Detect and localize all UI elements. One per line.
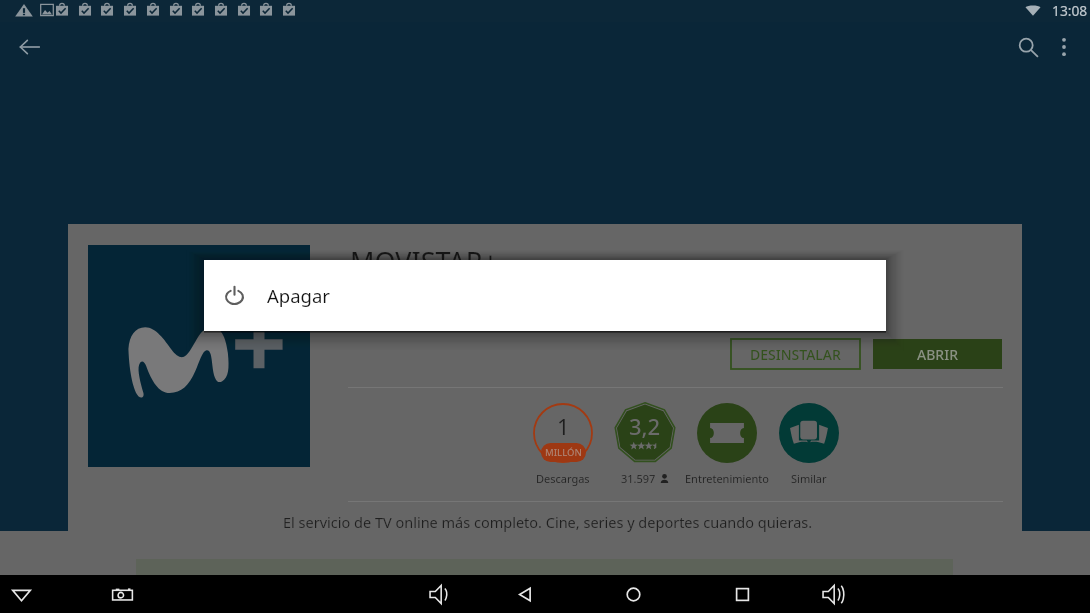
staticText: MILLÓN — [545, 446, 582, 459]
button[interactable]: Volume down — [423, 575, 455, 613]
staticText: MOVISTAR+ — [350, 243, 499, 280]
staticText: 31.597 — [621, 471, 656, 486]
staticText: Similar — [791, 471, 827, 486]
staticText: 3,2 — [629, 411, 661, 441]
button[interactable]: 1 — [488, 403, 638, 489]
button[interactable]: Apagar — [204, 260, 886, 331]
button[interactable]: 3,2 — [570, 403, 720, 489]
staticText: Apagar — [267, 283, 330, 308]
button[interactable]: Search — [1007, 26, 1049, 68]
button[interactable]: ABRIR — [873, 339, 1002, 369]
button[interactable]: Entretenimiento — [652, 403, 802, 489]
staticText: 13:08 — [1052, 1, 1088, 20]
button[interactable]: DESINSTALAR — [731, 339, 860, 369]
staticText: 1 — [557, 411, 570, 441]
button[interactable]: Volume up — [816, 575, 848, 613]
button[interactable]: More options — [1043, 26, 1085, 68]
staticText: ABRIR — [917, 345, 958, 364]
button[interactable]: Hide — [5, 575, 37, 613]
button[interactable]: Back — [509, 575, 541, 613]
staticText: Entretenimiento — [685, 471, 769, 486]
button[interactable]: Similar — [734, 403, 884, 489]
staticText: DESINSTALAR — [750, 345, 841, 364]
button[interactable]: Back — [9, 26, 51, 68]
staticText: El servicio de TV online más completo. C… — [283, 512, 813, 532]
staticText: Descargas — [536, 471, 590, 486]
button[interactable]: Recents — [726, 575, 758, 613]
button[interactable]: Screenshot — [106, 575, 138, 613]
button[interactable]: Home — [617, 575, 649, 613]
